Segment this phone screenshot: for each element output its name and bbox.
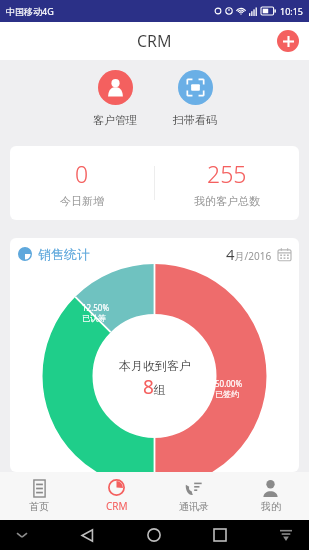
staticText: 今日新增 bbox=[60, 194, 104, 208]
staticText: CRM bbox=[106, 499, 128, 513]
button[interactable]: 0 bbox=[10, 146, 154, 220]
staticText: 销售统计 bbox=[38, 246, 90, 262]
button[interactable]: Recent apps bbox=[209, 524, 231, 546]
staticText: CRM bbox=[137, 30, 172, 52]
button[interactable]: 扫带看码 bbox=[164, 66, 226, 127]
staticText: 已签约 bbox=[215, 389, 239, 399]
button[interactable]: Back bbox=[76, 524, 98, 546]
staticText: 我的 bbox=[261, 500, 281, 513]
button[interactable]: 通讯录 bbox=[155, 472, 232, 520]
button[interactable]: Add customer bbox=[277, 30, 299, 52]
staticText: 10:15 bbox=[280, 5, 304, 17]
staticText: 通讯录 bbox=[179, 500, 209, 513]
staticText: 4月/2016 bbox=[226, 244, 272, 264]
staticText: 我的客户总数 bbox=[194, 194, 260, 208]
staticText: 首页 bbox=[29, 500, 49, 513]
button[interactable]: 首页 bbox=[0, 472, 78, 520]
staticText: 中国移动4G bbox=[6, 5, 54, 17]
staticText: 12.50% bbox=[82, 302, 110, 313]
button[interactable]: 我的 bbox=[232, 472, 309, 520]
button[interactable]: Hide navigation bar bbox=[12, 525, 32, 545]
staticText: 0 bbox=[75, 158, 89, 189]
button[interactable]: Downloads bbox=[275, 524, 297, 546]
staticText: 已认筹 bbox=[82, 313, 106, 323]
button[interactable]: 客户管理 bbox=[84, 66, 146, 127]
button[interactable]: 255 bbox=[155, 146, 299, 220]
button[interactable]: CRM bbox=[78, 472, 155, 520]
button[interactable]: 销售统计 bbox=[18, 246, 90, 262]
button[interactable]: Select month bbox=[226, 244, 291, 264]
staticText: 扫带看码 bbox=[173, 113, 217, 127]
button[interactable]: Home bbox=[143, 524, 165, 546]
staticText: 8组 bbox=[143, 374, 166, 400]
staticText: 255 bbox=[207, 158, 247, 189]
staticText: 本月收到客户 bbox=[119, 358, 191, 373]
staticText: 50.00% bbox=[215, 378, 243, 389]
staticText: 客户管理 bbox=[93, 113, 137, 127]
